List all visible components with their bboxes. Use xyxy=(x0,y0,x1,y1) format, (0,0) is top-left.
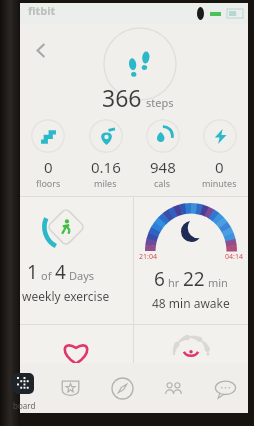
staticText: miles xyxy=(94,177,117,189)
button[interactable]: Explore xyxy=(107,373,137,403)
staticText: 22 xyxy=(183,266,205,292)
button[interactable]: More xyxy=(210,373,240,403)
staticText: 04:14 xyxy=(225,252,243,262)
staticText: 0 xyxy=(215,157,224,177)
button[interactable]: Dashboard xyxy=(55,373,85,403)
button[interactable]: Fitbit app icon xyxy=(13,373,34,394)
button[interactable]: 0 xyxy=(19,116,77,196)
button[interactable]: 0.16 xyxy=(77,116,134,196)
staticText: fitbit xyxy=(28,3,56,18)
staticText: Days xyxy=(69,268,95,283)
staticText: 21:04 xyxy=(139,252,157,262)
staticText: 4 xyxy=(55,259,66,285)
staticText: 0.16 xyxy=(91,157,121,177)
staticText: cals xyxy=(154,177,171,189)
button[interactable]: 948 xyxy=(134,116,191,196)
button[interactable]: Friends xyxy=(158,373,188,403)
staticText: of xyxy=(41,268,52,283)
staticText: 0 xyxy=(44,157,53,177)
staticText: 6 xyxy=(154,266,165,292)
staticText: 366 xyxy=(102,82,142,113)
staticText: 948 xyxy=(150,157,176,177)
button[interactable] xyxy=(134,325,248,363)
staticText: minutes xyxy=(202,177,237,189)
staticText: 48 min awake xyxy=(152,295,230,311)
staticText: weekly exercise xyxy=(22,288,110,304)
button[interactable]: 21:04 xyxy=(134,197,248,324)
staticText: min xyxy=(208,275,228,290)
button[interactable] xyxy=(19,325,133,363)
staticText: hr xyxy=(168,275,180,290)
staticText: board xyxy=(13,400,36,411)
staticText: steps xyxy=(146,95,174,110)
staticText: 1 xyxy=(27,259,38,285)
button[interactable]: 0 xyxy=(191,116,248,196)
button[interactable]: 1 xyxy=(19,197,133,324)
staticText: floors xyxy=(36,177,61,189)
button[interactable]: Back xyxy=(26,35,56,65)
